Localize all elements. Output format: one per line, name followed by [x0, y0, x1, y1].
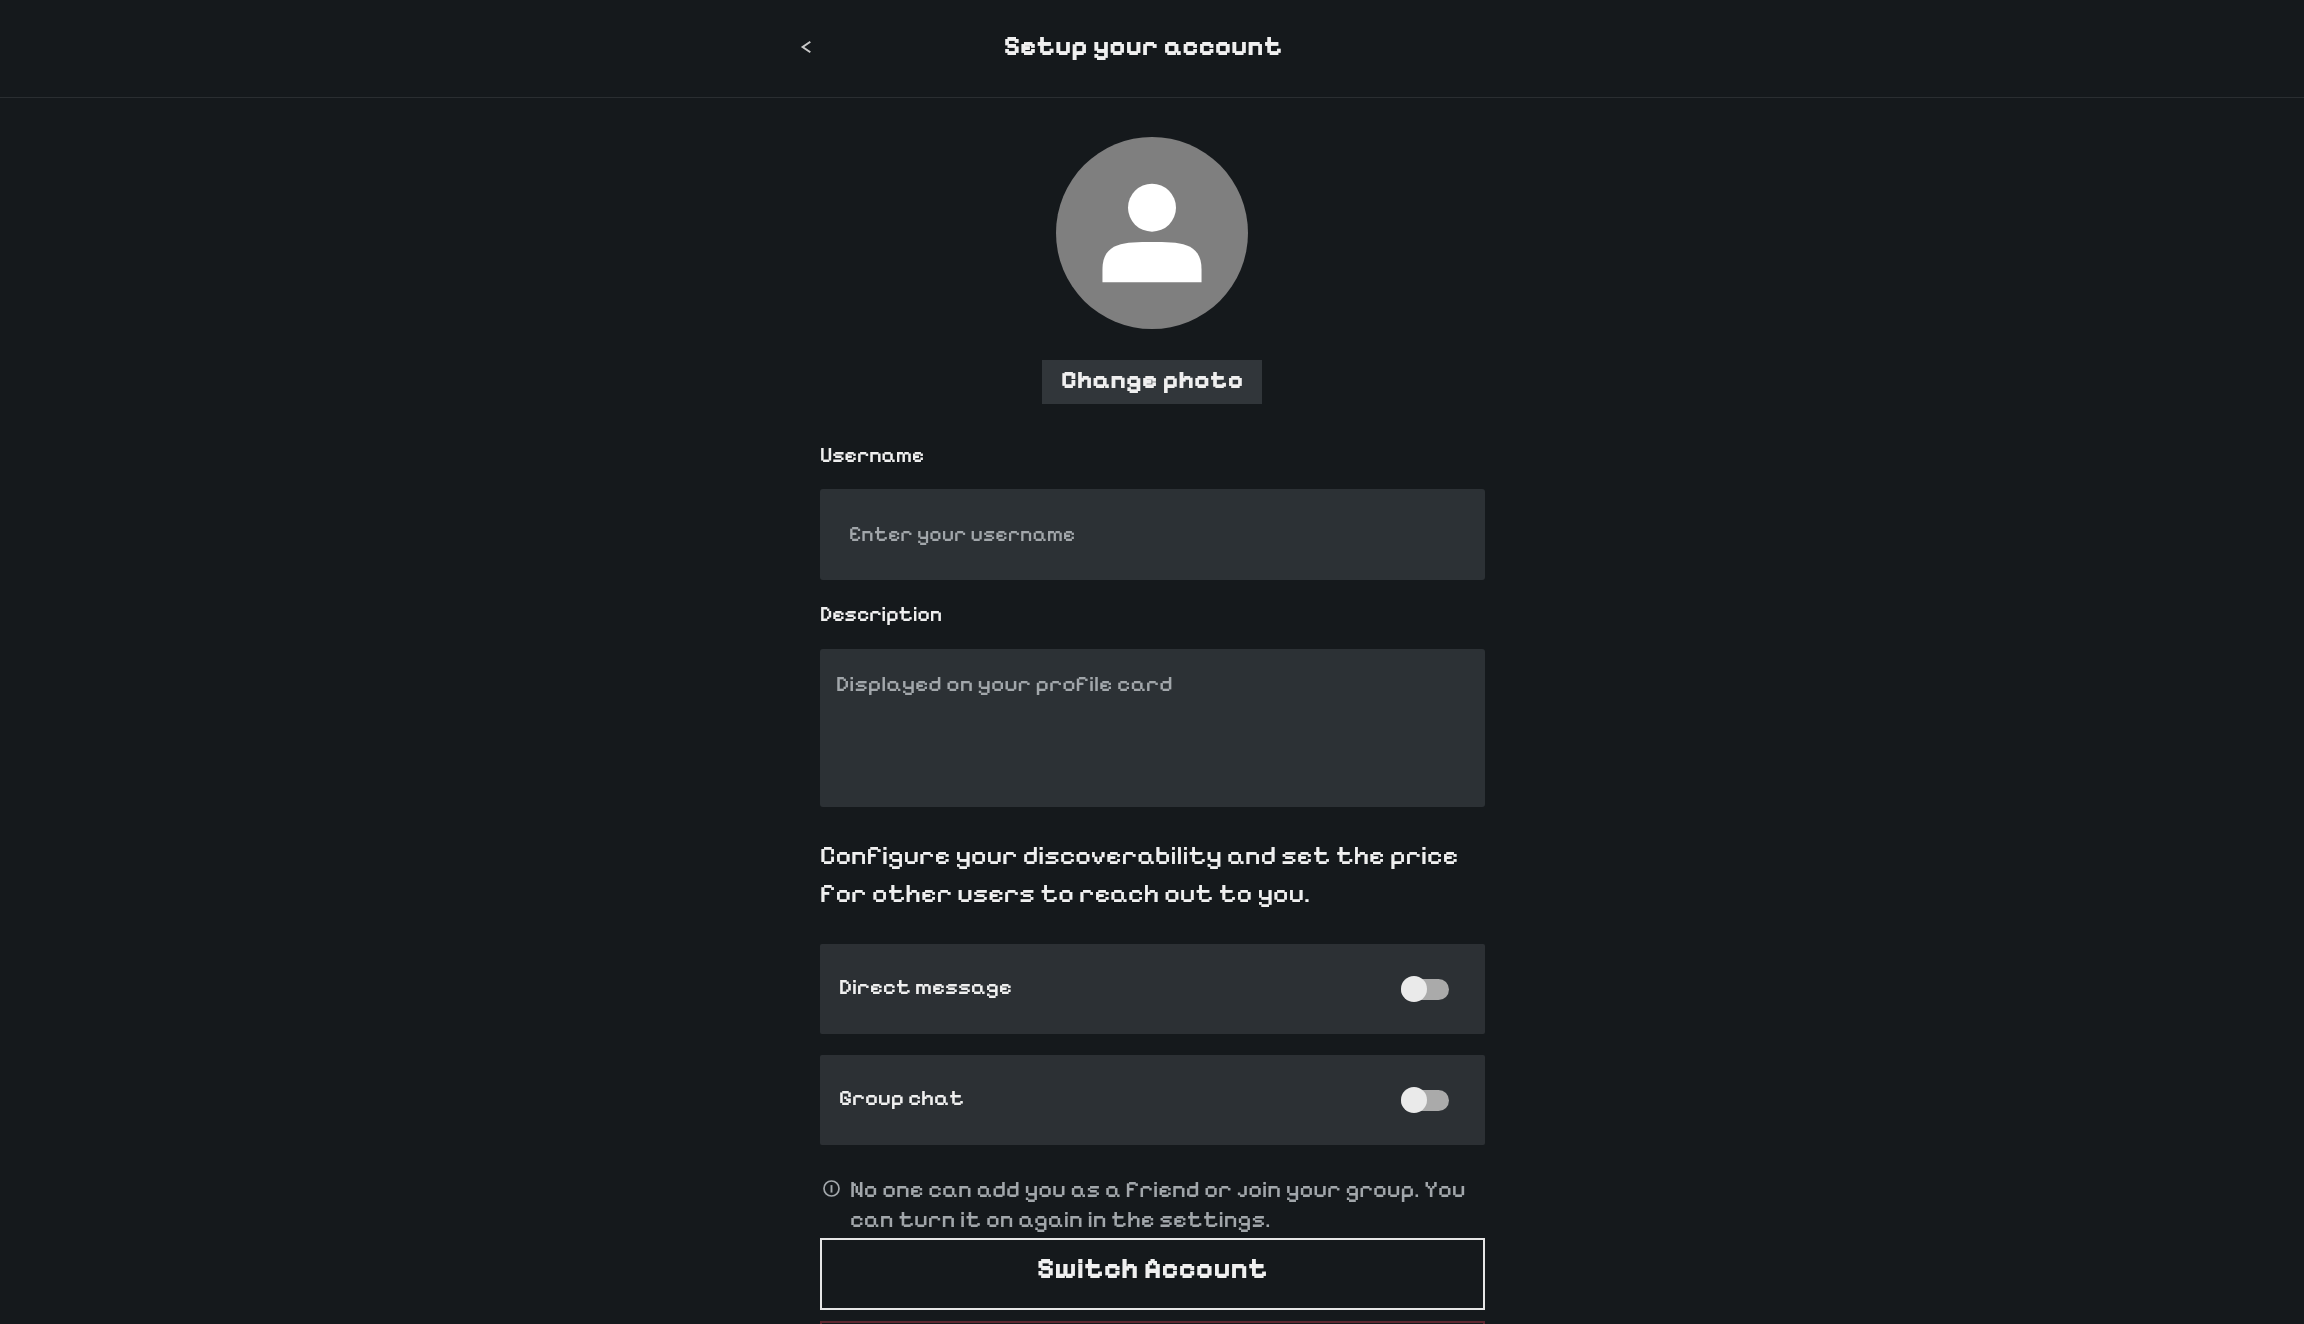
button[interactable]: Toggle Group chat: [1401, 1087, 1449, 1113]
button[interactable]: Delete Account: [820, 1321, 1485, 1324]
button[interactable]: Displayed on your profile card: [820, 649, 1485, 807]
button[interactable]: Back: [780, 21, 832, 73]
button[interactable]: Change photo: [1042, 360, 1262, 404]
button[interactable]: Switch Account: [820, 1238, 1485, 1310]
button[interactable]: Group chat: [820, 1055, 1485, 1145]
button[interactable]: Profile photo: [1056, 137, 1248, 329]
staticText: Enter your username: [849, 522, 1076, 547]
button[interactable]: Enter your username: [820, 489, 1485, 580]
staticText: Group chat: [839, 1085, 964, 1112]
staticText: No one can add you as a friend or join y…: [850, 1175, 1475, 1234]
staticText: Switch Account: [1037, 1252, 1268, 1286]
staticText: Configure your discoverability and set t…: [820, 840, 1485, 910]
staticText: Direct message: [839, 974, 1012, 1001]
button[interactable]: Toggle Direct message: [1401, 976, 1449, 1002]
staticText: Change photo: [1061, 364, 1244, 395]
staticText: Username: [820, 443, 925, 468]
staticText: Description: [820, 602, 942, 627]
button[interactable]: Direct message: [820, 944, 1485, 1034]
staticText: Setup your account: [0, 30, 2295, 62]
staticText: Displayed on your profile card: [836, 670, 1173, 697]
